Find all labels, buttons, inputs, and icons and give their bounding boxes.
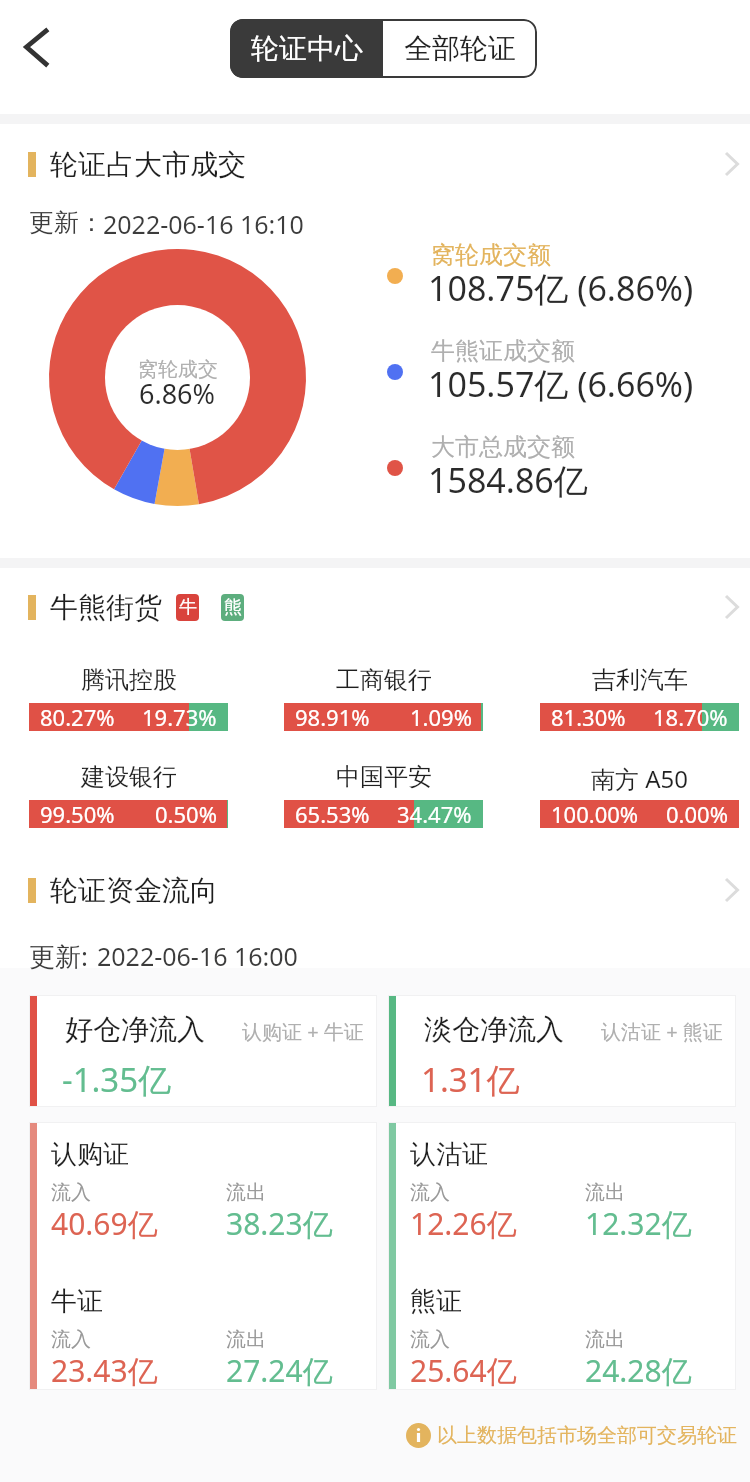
staticText: 认购证 + 牛证	[242, 1018, 364, 1045]
staticText: 认沽证	[410, 1138, 488, 1171]
button[interactable]: 轮证占大市成交	[0, 142, 750, 186]
staticText: 1.31亿	[421, 1057, 520, 1102]
staticText: 流出	[585, 1327, 625, 1352]
staticText: 流入	[51, 1180, 91, 1205]
staticText: 6.86%	[139, 375, 216, 412]
staticText: 吉利汽车	[592, 665, 688, 695]
staticText: 流入	[410, 1180, 450, 1205]
staticText: 18.70%	[653, 702, 728, 730]
staticText: 牛证	[51, 1285, 103, 1318]
staticText: 27.24亿	[226, 1350, 333, 1391]
staticText: 12.32亿	[585, 1203, 692, 1244]
staticText: 熊证	[410, 1285, 462, 1318]
staticText: 1.09%	[410, 702, 472, 730]
staticText: 100.00%	[551, 799, 639, 827]
staticText: 24.28亿	[585, 1350, 692, 1391]
button[interactable]: 轮证中心	[230, 19, 383, 78]
staticText: 40.69亿	[51, 1203, 158, 1244]
staticText: 淡仓净流入	[424, 1012, 564, 1047]
staticText: 流入	[410, 1327, 450, 1352]
button[interactable]: 全部轮证	[383, 19, 537, 78]
staticText: 1584.86亿	[428, 457, 588, 503]
staticText: -1.35亿	[62, 1057, 172, 1102]
staticText: 全部轮证	[404, 31, 516, 66]
button[interactable]: 腾讯控股	[29, 665, 228, 731]
staticText: 窝轮成交	[138, 357, 218, 382]
staticText: 流出	[226, 1180, 266, 1205]
button[interactable]: 牛熊街货	[0, 585, 750, 629]
staticText: 12.26亿	[410, 1203, 517, 1244]
staticText: 25.64亿	[410, 1350, 517, 1391]
button[interactable]: 轮证资金流向	[0, 868, 750, 912]
staticText: 腾讯控股	[81, 665, 177, 695]
staticText: 105.57亿 (6.66%)	[428, 361, 694, 407]
staticText: 轮证中心	[251, 31, 363, 66]
staticText: 98.91%	[295, 702, 370, 730]
staticText: 认购证	[51, 1138, 129, 1171]
staticText: 认沽证 + 熊证	[601, 1018, 723, 1045]
staticText: 更新：	[29, 207, 104, 238]
staticText: 牛	[179, 596, 197, 619]
button[interactable]: 中国平安	[284, 762, 483, 828]
staticText: 轮证资金流向	[50, 873, 218, 908]
button[interactable]: 南方 A50	[540, 762, 739, 828]
staticText: 牛熊证成交额	[431, 336, 575, 366]
staticText: 南方 A50	[591, 762, 689, 795]
staticText: 38.23亿	[226, 1203, 333, 1244]
staticText: 34.47%	[397, 799, 472, 827]
staticText: 建设银行	[81, 762, 177, 792]
staticText: 牛熊街货	[50, 590, 162, 625]
button[interactable]: 淡仓净流入	[388, 995, 736, 1107]
staticText: 99.50%	[40, 799, 115, 827]
staticText: 更新:	[29, 938, 88, 974]
staticText: 65.53%	[295, 799, 370, 827]
staticText: 0.50%	[155, 799, 217, 827]
button[interactable]: 建设银行	[29, 762, 228, 828]
staticText: 流出	[226, 1327, 266, 1352]
staticText: 轮证占大市成交	[50, 147, 246, 182]
button[interactable]: 吉利汽车	[540, 665, 739, 731]
staticText: 80.27%	[40, 702, 115, 730]
staticText: 23.43亿	[51, 1350, 158, 1391]
staticText: 熊	[224, 596, 242, 619]
button[interactable]: 工商银行	[284, 665, 483, 731]
staticText: 2022-06-16 16:10	[103, 207, 304, 241]
button[interactable]: 认沽证	[388, 1122, 736, 1390]
button[interactable]: 以上数据包括市场全部可交易轮证	[406, 1423, 737, 1448]
button[interactable]: Back	[5, 18, 65, 78]
staticText: 81.30%	[551, 702, 626, 730]
staticText: 流出	[585, 1180, 625, 1205]
staticText: 中国平安	[336, 762, 432, 792]
button[interactable]: 认购证	[29, 1122, 377, 1390]
staticText: 大市总成交额	[431, 432, 575, 462]
staticText: 工商银行	[336, 665, 432, 695]
staticText: 2022-06-16 16:00	[97, 939, 298, 973]
staticText: 108.75亿 (6.86%)	[428, 265, 694, 311]
staticText: 以上数据包括市场全部可交易轮证	[437, 1423, 737, 1448]
staticText: 流入	[51, 1327, 91, 1352]
button[interactable]: 好仓净流入	[29, 995, 377, 1107]
staticText: 0.00%	[666, 799, 728, 827]
staticText: 好仓净流入	[65, 1012, 205, 1047]
staticText: 窝轮成交额	[431, 240, 551, 270]
staticText: 19.73%	[142, 702, 217, 730]
